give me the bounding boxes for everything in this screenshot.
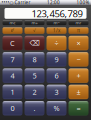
staticText: 5 xyxy=(32,71,36,81)
button[interactable]: m+ xyxy=(24,20,44,25)
button[interactable]: 9 xyxy=(46,52,66,67)
button[interactable]: 7 xyxy=(2,52,22,67)
staticText: − xyxy=(76,54,80,64)
button[interactable]: + xyxy=(68,68,88,83)
button[interactable]: . xyxy=(24,101,44,115)
staticText: π xyxy=(77,27,80,34)
staticText: √ xyxy=(33,28,36,33)
staticText: C xyxy=(10,38,15,48)
staticText: . xyxy=(33,103,35,113)
button[interactable]: √ xyxy=(24,27,44,34)
button[interactable]: = xyxy=(68,101,88,115)
staticText: 7 xyxy=(10,54,14,64)
staticText: 100% xyxy=(76,0,89,6)
button[interactable]: ⌫ xyxy=(24,36,44,50)
staticText: 123,456,789 xyxy=(31,7,82,20)
button[interactable]: − xyxy=(68,52,88,67)
staticText: 0 xyxy=(10,103,14,113)
staticText: ••••○ xyxy=(1,0,13,6)
staticText: m+ xyxy=(31,20,37,25)
button[interactable]: ÷ xyxy=(46,36,66,50)
staticText: × xyxy=(76,38,80,48)
staticText: m− xyxy=(53,20,59,25)
button[interactable]: × xyxy=(68,36,88,50)
button[interactable]: 2 xyxy=(24,85,44,99)
staticText: 9 xyxy=(54,54,58,64)
button[interactable]: 0 xyxy=(2,101,22,115)
button[interactable]: ± xyxy=(68,85,88,99)
staticText: ± xyxy=(76,87,80,97)
staticText: 3 xyxy=(54,87,58,97)
staticText: mr xyxy=(75,20,81,25)
staticText: ÷ xyxy=(54,38,58,48)
staticText: ⌫ xyxy=(29,39,39,47)
button[interactable]: 4 xyxy=(2,68,22,83)
staticText: 8 xyxy=(32,54,36,64)
button[interactable]: m− xyxy=(46,20,66,25)
staticText: + xyxy=(76,71,80,81)
button[interactable]: 1 xyxy=(2,85,22,99)
staticText: x² xyxy=(10,27,14,34)
button[interactable]: 3 xyxy=(46,85,66,99)
button[interactable]: π xyxy=(68,27,88,34)
staticText: = xyxy=(76,103,80,113)
staticText: 2 xyxy=(32,87,36,97)
button[interactable]: 1/x xyxy=(46,27,66,34)
staticText: 12:00 xyxy=(47,0,60,6)
button[interactable]: 6 xyxy=(46,68,66,83)
staticText: % xyxy=(53,103,59,113)
staticText: 6 xyxy=(54,71,58,81)
button[interactable]: 5 xyxy=(24,68,44,83)
staticText: 4 xyxy=(10,71,14,81)
staticText: Carrier xyxy=(14,0,30,6)
button[interactable]: C xyxy=(2,36,22,50)
staticText: 1 xyxy=(10,87,14,97)
button[interactable]: % xyxy=(46,101,66,115)
button[interactable]: mc xyxy=(2,20,22,25)
button[interactable]: x² xyxy=(2,27,22,34)
button[interactable]: 8 xyxy=(24,52,44,67)
staticText: mc xyxy=(9,20,15,25)
button[interactable]: mr xyxy=(68,20,88,25)
staticText: 1/x xyxy=(53,27,60,34)
